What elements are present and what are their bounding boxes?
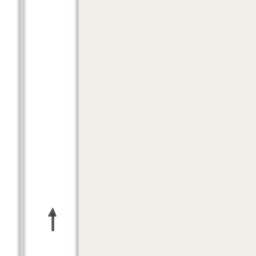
button[interactable]: Scroll to top (32, 200, 72, 240)
